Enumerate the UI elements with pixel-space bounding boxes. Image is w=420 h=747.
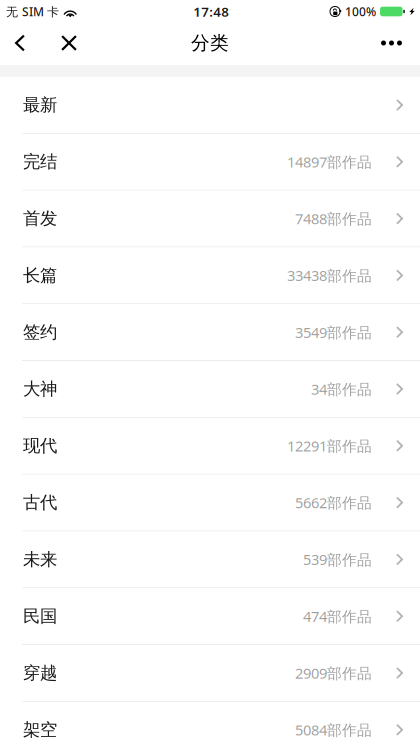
button[interactable]: 现代 (0, 418, 420, 475)
button[interactable]: 古代 (0, 475, 420, 531)
button[interactable]: 未来 (0, 531, 420, 588)
button[interactable]: 穿越 (0, 645, 420, 702)
staticText: 5084部作品 (295, 720, 372, 740)
staticText: 3549部作品 (295, 322, 372, 342)
staticText: 古代 (23, 492, 57, 513)
button[interactable]: 完结 (0, 134, 420, 191)
button[interactable]: 签约 (0, 304, 420, 361)
staticText: 17:48 (193, 3, 229, 20)
button[interactable]: 长篇 (0, 247, 420, 304)
staticText: 签约 (23, 322, 57, 343)
staticText: 474部作品 (303, 606, 372, 626)
staticText: 首发 (23, 208, 57, 229)
staticText: 完结 (23, 151, 57, 172)
staticText: 14897部作品 (287, 152, 372, 172)
button[interactable]: 民国 (0, 588, 420, 645)
staticText: 长篇 (23, 265, 57, 286)
button[interactable]: 架空 (0, 702, 420, 747)
button[interactable]: 更多 (365, 26, 420, 59)
staticText: 架空 (23, 719, 57, 740)
staticText: 现代 (23, 435, 57, 456)
staticText: 穿越 (23, 662, 57, 684)
staticText: 5662部作品 (295, 493, 372, 512)
staticText: 大神 (23, 378, 57, 400)
staticText: 2909部作品 (295, 663, 372, 683)
staticText: 33438部作品 (287, 266, 372, 285)
staticText: 民国 (23, 606, 57, 627)
staticText: 34部作品 (311, 379, 372, 399)
staticText: 12291部作品 (287, 436, 372, 456)
staticText: 100% (345, 3, 376, 19)
staticText: 无 SIM 卡 (6, 3, 59, 19)
staticText: 7488部作品 (295, 209, 372, 228)
button[interactable]: 首发 (0, 191, 420, 247)
button[interactable]: 大神 (0, 361, 420, 418)
button[interactable]: 返回 (0, 24, 43, 61)
staticText: 最新 (23, 94, 57, 116)
staticText: 未来 (23, 549, 57, 570)
staticText: 分类 (191, 31, 229, 54)
button[interactable]: 关闭 (43, 25, 93, 61)
button[interactable]: 最新 (0, 77, 420, 134)
staticText: 539部作品 (303, 550, 372, 569)
